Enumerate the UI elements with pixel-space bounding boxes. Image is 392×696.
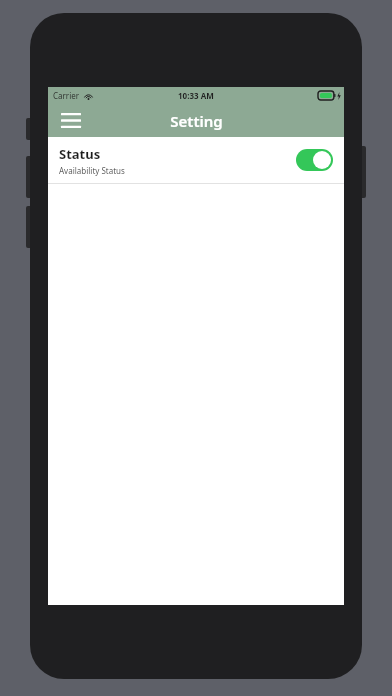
staticText: 10:33 AM — [178, 90, 214, 101]
button[interactable]: Open navigation menu — [54, 104, 88, 137]
staticText: Carrier — [53, 90, 80, 101]
staticText: Availability Status — [59, 165, 125, 176]
button[interactable]: Status — [48, 137, 344, 183]
staticText: Status — [59, 145, 101, 163]
button[interactable]: Availability status toggle, on — [296, 149, 333, 171]
staticText: Setting — [170, 111, 223, 131]
